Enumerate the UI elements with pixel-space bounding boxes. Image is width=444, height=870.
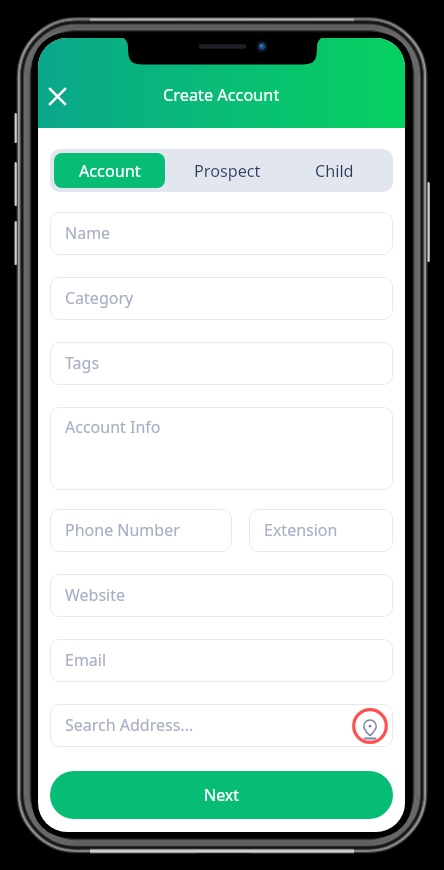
button[interactable]: Account bbox=[54, 153, 165, 188]
button[interactable]: Next bbox=[50, 771, 393, 819]
button[interactable]: Name bbox=[50, 212, 393, 255]
button[interactable]: Account Info bbox=[50, 407, 393, 490]
button[interactable]: Extension bbox=[249, 509, 393, 552]
staticText: Phone Number bbox=[65, 519, 180, 541]
staticText: Category bbox=[65, 287, 134, 309]
button[interactable]: Email bbox=[50, 639, 393, 682]
button[interactable]: Tags bbox=[50, 342, 393, 385]
staticText: Name bbox=[65, 222, 111, 244]
button[interactable]: Child bbox=[277, 153, 389, 188]
button[interactable]: Website bbox=[50, 574, 393, 617]
button[interactable]: Category bbox=[50, 277, 393, 320]
button[interactable]: Search Address... bbox=[50, 704, 393, 747]
staticText: Next bbox=[204, 784, 240, 806]
staticText: Account Info bbox=[65, 416, 161, 438]
staticText: Extension bbox=[264, 519, 338, 541]
button[interactable]: Use my location bbox=[352, 708, 388, 744]
staticText: Tags bbox=[65, 352, 100, 374]
staticText: Prospect bbox=[194, 160, 261, 182]
staticText: Search Address... bbox=[65, 714, 194, 736]
staticText: Email bbox=[65, 649, 107, 671]
staticText: Account bbox=[79, 160, 141, 182]
staticText: Child bbox=[315, 160, 354, 182]
button[interactable]: Prospect bbox=[165, 153, 277, 188]
button[interactable]: Phone Number bbox=[50, 509, 232, 552]
button[interactable]: Close bbox=[38, 76, 77, 116]
staticText: Create Account bbox=[163, 84, 280, 106]
staticText: Website bbox=[65, 584, 126, 606]
